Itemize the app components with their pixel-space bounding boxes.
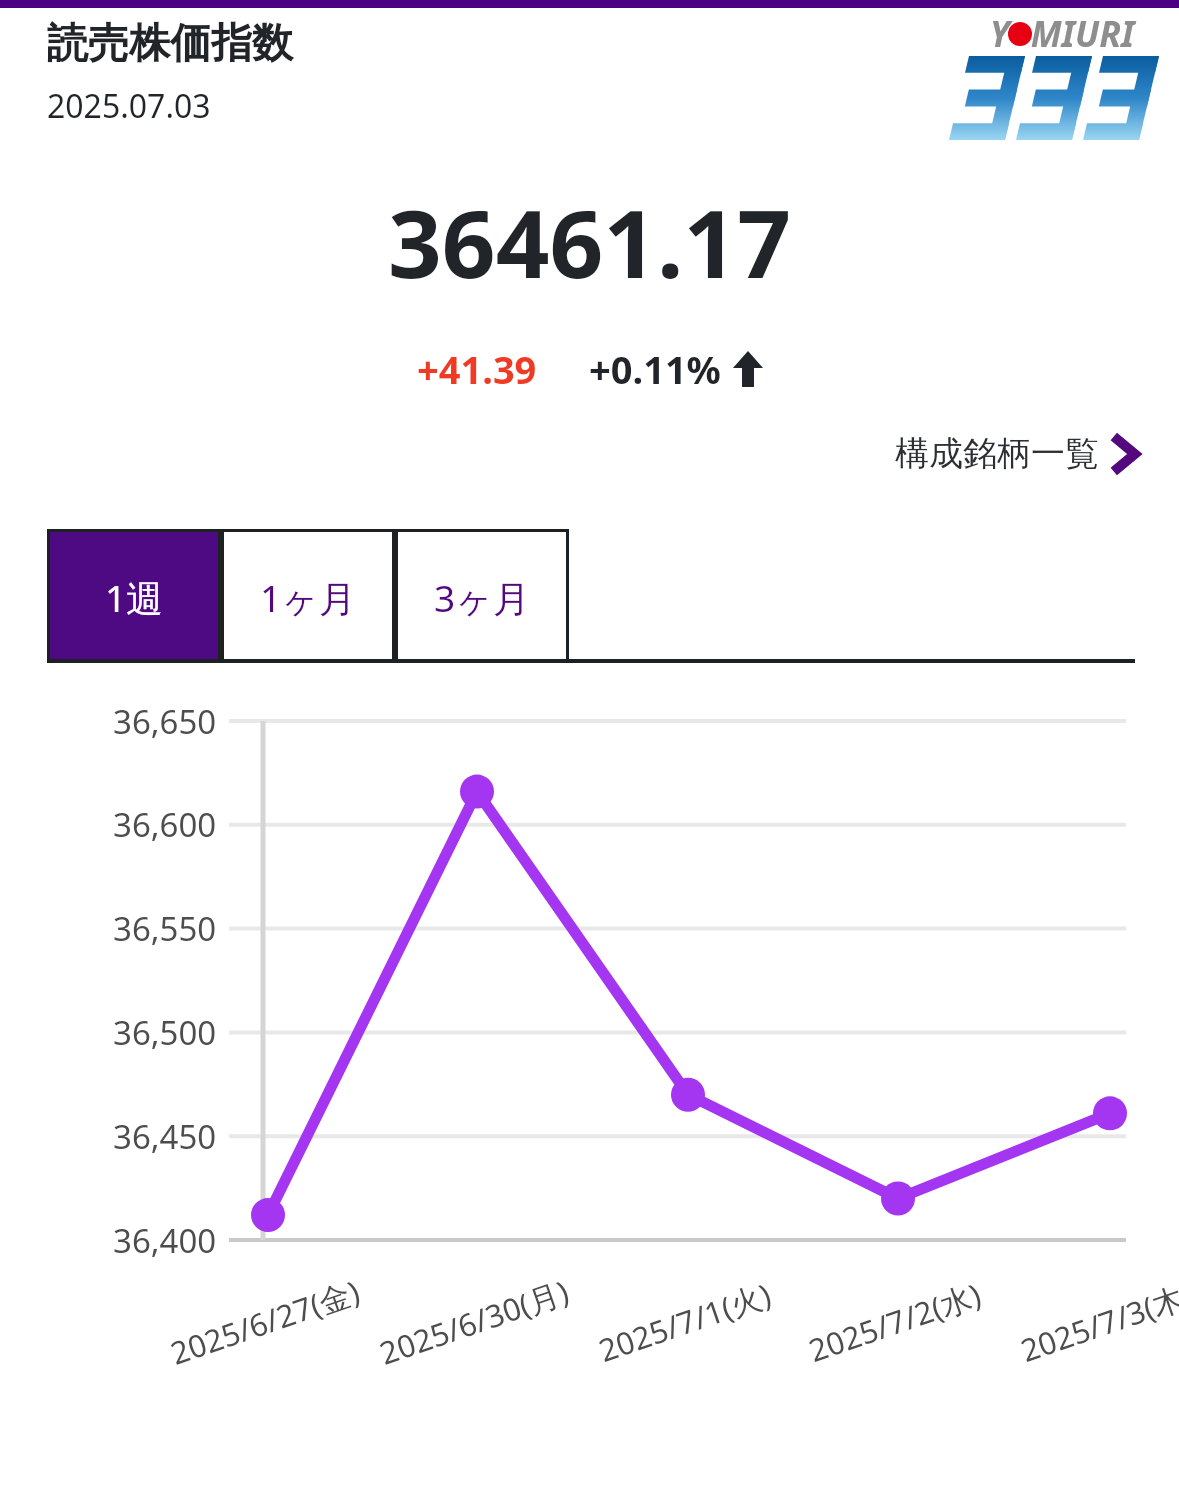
staticText: 構成銘柄一覧 — [895, 432, 1099, 475]
button[interactable]: 3ヶ月 — [398, 532, 566, 663]
staticText: +41.39 — [417, 343, 537, 395]
button[interactable]: 構成銘柄一覧 — [891, 424, 1141, 483]
other: Up — [733, 351, 763, 387]
staticText: 1週 — [105, 572, 164, 623]
staticText: 36461.17 — [388, 178, 791, 306]
staticText: +0.11% — [589, 343, 721, 395]
staticText: 1ヶ月 — [260, 572, 357, 623]
other: YOMIURI 333 — [934, 10, 1139, 140]
button[interactable]: 1週 — [50, 532, 218, 663]
staticText: 3ヶ月 — [434, 572, 531, 623]
staticText: 読売株価指数 — [47, 18, 293, 70]
staticText: 2025.07.03 — [47, 84, 211, 128]
button[interactable]: 1ヶ月 — [224, 532, 392, 663]
